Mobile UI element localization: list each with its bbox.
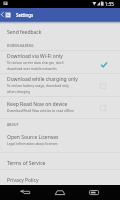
button[interactable]: Home [50,185,70,200]
staticText: 1:55 [105,1,114,7]
staticText: DOWNLOADING [7,44,34,48]
button[interactable]: Send feedback [0,29,120,37]
staticText: Download Read Now articles to read offli… [7,108,74,112]
staticText: ABOUT [7,123,19,127]
button[interactable]: Download while charging only [0,76,120,84]
button[interactable]: Privacy Policy [0,177,120,185]
staticText: To reduce battery usage, download only w… [7,83,69,94]
staticText: Send feedback [7,29,42,36]
button[interactable]: Open Source Licenses [0,134,120,142]
staticText: Keep Read Now on device [7,101,68,108]
button[interactable]: Navigate up [0,8,5,21]
button[interactable]: Terms of Service [0,160,120,168]
staticText: Legal information about licenses [7,141,58,145]
staticText: Terms of Service [7,160,46,167]
staticText: To reduce carrier data charges, don't do… [7,60,64,71]
staticText: Settings [16,12,34,18]
staticText: Privacy Policy [7,177,39,184]
staticText: Download while charging only [7,76,78,83]
button[interactable]: Back [15,185,35,200]
button[interactable]: Keep Read Now on device [0,101,120,109]
button[interactable]: Recent apps [84,185,104,200]
staticText: Download via Wi-Fi only [7,53,63,60]
button[interactable]: Checked [96,57,112,73]
staticText: Open Source Licenses [7,134,59,141]
button[interactable]: Download via Wi-Fi only [0,53,120,61]
